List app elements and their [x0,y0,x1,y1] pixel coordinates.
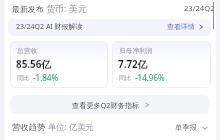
staticText: 货币: 美元 [46,2,87,14]
staticText: 单季报 [175,123,197,132]
button[interactable]: 归母净利润 [112,41,211,88]
button[interactable]: 23/24Q2 AI 财报解读 [8,19,211,36]
staticText: 归母净利润 [119,47,153,55]
staticText: 查看详情 [167,22,195,31]
staticText: 单位: 亿美元 [48,121,94,132]
staticText: 总营收 [17,47,38,55]
staticText: 23/24Q2 AI 财报解读 [16,22,83,32]
staticText: -14.96% [135,72,165,83]
staticText: 同比 [119,74,131,82]
staticText: 7.72亿 [118,57,148,71]
staticText: -1.84% [33,72,59,83]
staticText: 23/24Q2 [184,3,215,13]
staticText: 同比 [17,74,29,82]
staticText: 营收趋势 [12,122,46,132]
button[interactable]: 查看更多Q2财务指标 [10,95,210,114]
button[interactable]: 单季报 [175,123,208,132]
staticText: 查看更多Q2财务指标 [72,100,140,110]
button[interactable]: 总营收 [10,41,108,88]
staticText: 85.56亿 [16,57,52,71]
staticText: 最新发布 [12,4,44,14]
